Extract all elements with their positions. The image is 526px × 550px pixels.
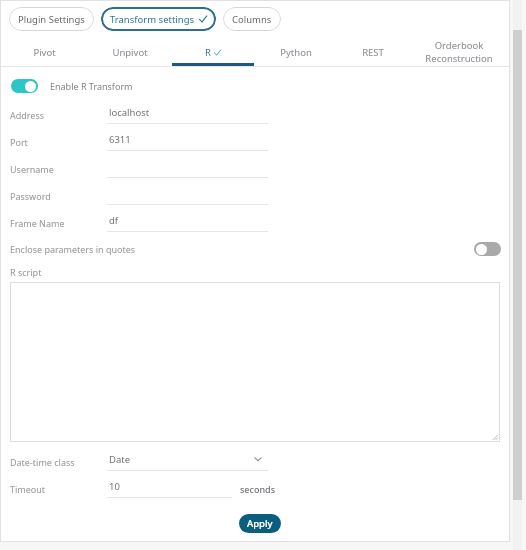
staticText: localhost	[109, 106, 150, 119]
staticText: Plugin Settings	[18, 13, 85, 26]
button[interactable]: Unpivot	[88, 38, 172, 66]
button[interactable]: 10	[107, 475, 232, 502]
button[interactable]: 6311	[107, 128, 268, 155]
button[interactable]: Enable R Transform	[11, 79, 38, 93]
staticText: Timeout	[10, 483, 46, 495]
button[interactable]: Plugin Settings	[9, 7, 94, 31]
staticText: 6311	[109, 133, 131, 146]
button[interactable]: Pivot	[0, 38, 88, 66]
button[interactable]: Enclose parameters in quotes	[474, 242, 501, 256]
button[interactable]: df	[107, 209, 268, 236]
staticText: Unpivot	[112, 46, 148, 59]
button[interactable]	[107, 182, 268, 209]
staticText: Address	[10, 109, 45, 121]
staticText: Date-time class	[10, 456, 75, 468]
button[interactable]: REST	[338, 38, 408, 66]
staticText: 10	[109, 480, 120, 493]
button[interactable]: R	[172, 38, 254, 66]
button[interactable]: Python	[254, 38, 338, 66]
staticText: Date	[109, 453, 131, 466]
staticText: Orderbook Reconstruction	[408, 39, 510, 65]
button[interactable]	[10, 282, 500, 442]
staticText: Enable R Transform	[50, 80, 133, 92]
staticText: Frame Name	[10, 217, 65, 229]
button[interactable]: Enable R Transform	[11, 75, 510, 97]
staticText: R script	[10, 266, 42, 278]
staticText: Password	[10, 190, 51, 202]
button[interactable]: Transform settings	[101, 7, 216, 31]
staticText: Username	[10, 163, 54, 175]
staticText: Pivot	[33, 46, 56, 59]
staticText: Columns	[232, 13, 272, 26]
button[interactable]: Enclose parameters in quotes	[0, 236, 510, 262]
button[interactable]: Apply	[239, 514, 281, 533]
staticText: df	[109, 214, 119, 227]
staticText: R	[205, 46, 211, 59]
staticText: Enclose parameters in quotes	[10, 243, 136, 255]
button[interactable]	[107, 155, 268, 182]
button[interactable]: Date	[107, 448, 268, 475]
staticText: Port	[10, 136, 28, 148]
staticText: Apply	[247, 517, 273, 530]
button[interactable]: localhost	[107, 101, 268, 128]
button[interactable]: Columns	[223, 7, 281, 31]
button[interactable]: Orderbook Reconstruction	[408, 38, 510, 66]
staticText: REST	[362, 46, 384, 59]
staticText: Python	[280, 46, 312, 59]
staticText: seconds	[240, 483, 276, 495]
staticText: Transform settings	[110, 13, 195, 26]
